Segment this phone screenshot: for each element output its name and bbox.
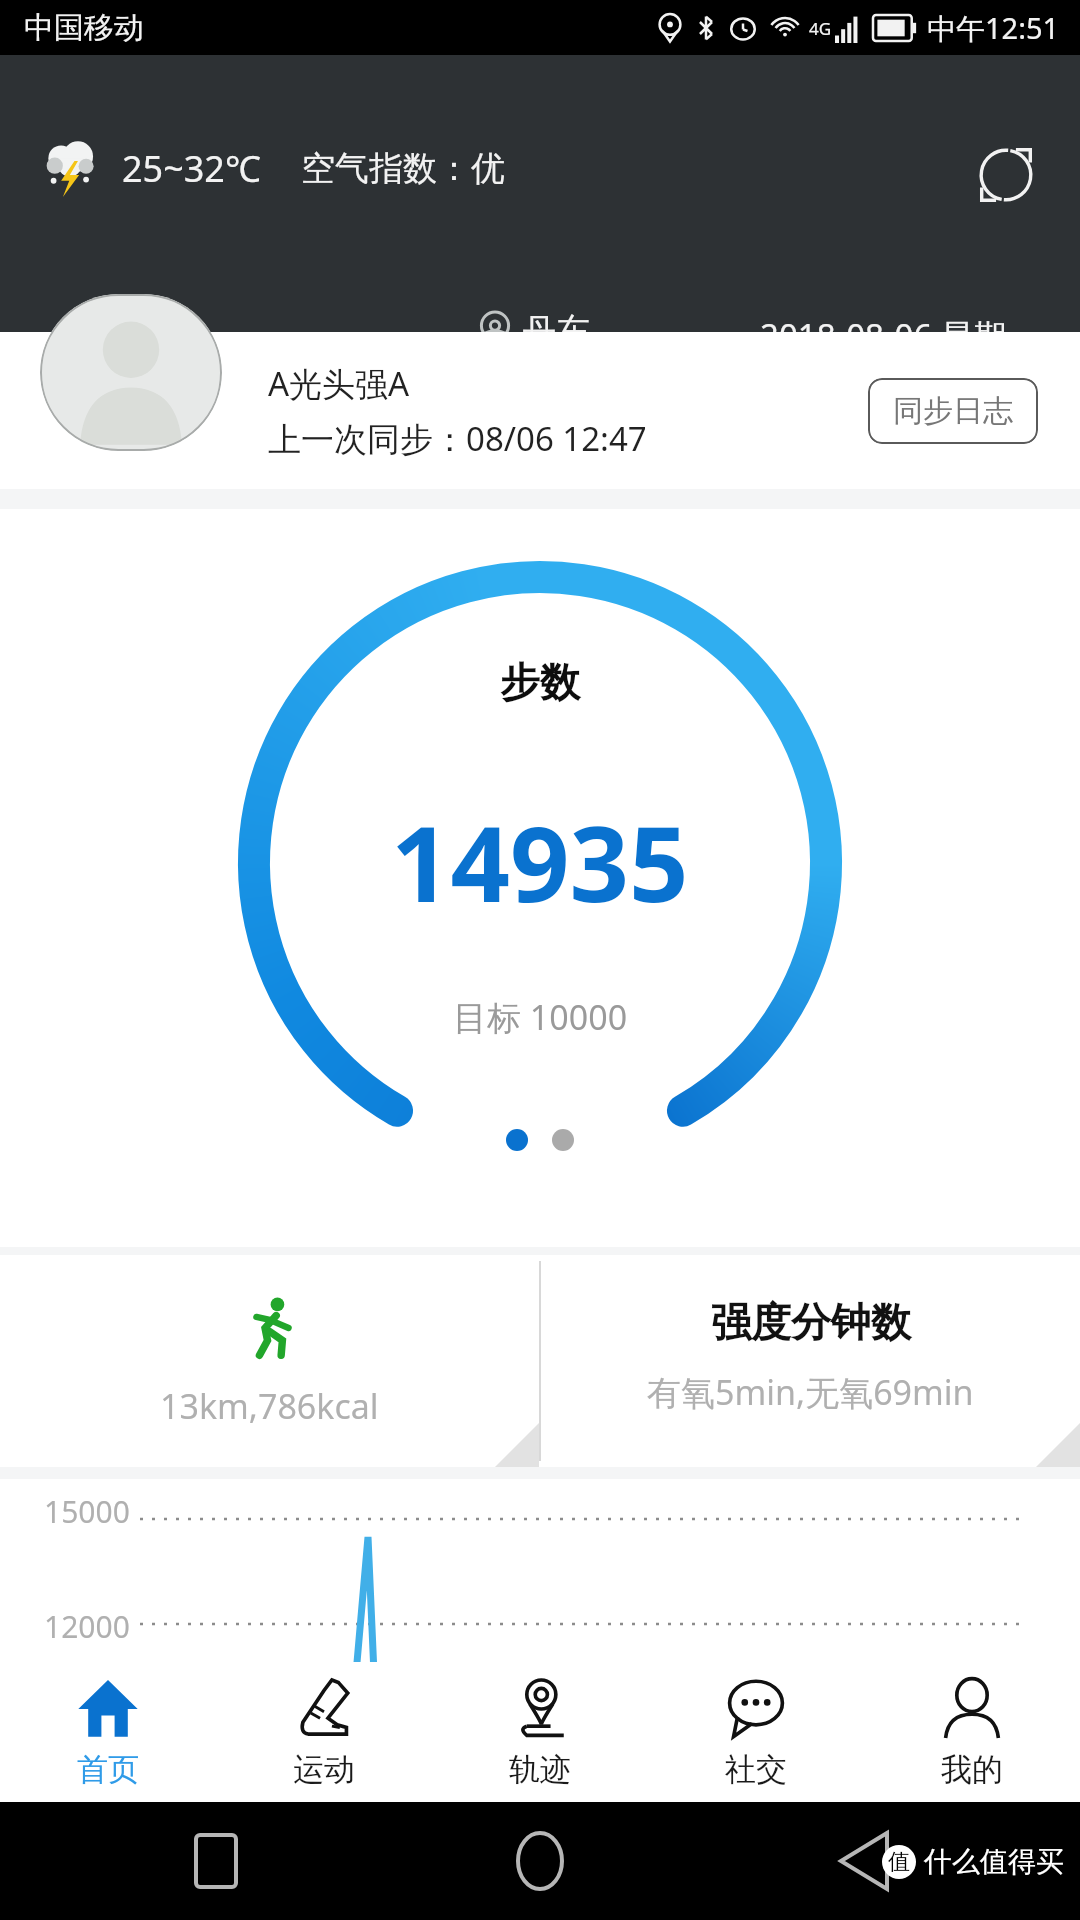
staticText: 13km,786kcal	[160, 1383, 379, 1429]
button[interactable]: Recent apps	[180, 1825, 252, 1897]
button[interactable]: 丹东	[478, 310, 590, 332]
button[interactable]: Profile avatar	[40, 294, 222, 451]
button[interactable]: 25~32℃	[42, 139, 505, 197]
staticText: 9000	[44, 1725, 113, 1766]
button[interactable]: 我的	[864, 1662, 1080, 1802]
button[interactable]: 轨迹	[432, 1662, 648, 1802]
button[interactable]: 强度分钟数	[541, 1255, 1080, 1467]
staticText: 丹东	[522, 310, 590, 332]
staticText: 值	[888, 1848, 910, 1876]
button[interactable]: Back	[828, 1825, 900, 1897]
button[interactable]: 同步日志	[868, 378, 1038, 444]
button[interactable]: Profile avatar	[0, 332, 1080, 489]
staticText: 运动	[293, 1750, 355, 1789]
button[interactable]: Page 1	[506, 1129, 528, 1151]
staticText: 同步日志	[893, 392, 1013, 430]
staticText: 中国移动	[24, 9, 144, 47]
staticText: A光头强A	[268, 361, 410, 406]
staticText: 上一次同步：08/06 12:47	[268, 416, 647, 461]
staticText: 25~32℃	[122, 144, 261, 193]
staticText: 有氧5min,无氧69min	[647, 1369, 974, 1415]
button[interactable]: Refresh	[966, 135, 1046, 215]
staticText: 2018-08-06 星期一	[760, 313, 1040, 332]
staticText: 轨迹	[509, 1750, 571, 1789]
button[interactable]: 社交	[648, 1662, 864, 1802]
button[interactable]: 首页	[0, 1662, 216, 1802]
staticText: 强度分钟数	[711, 1297, 911, 1347]
button[interactable]: Home	[504, 1825, 576, 1897]
button[interactable]: Page 2	[552, 1129, 574, 1151]
button[interactable]: Steps distance and calories	[0, 1255, 539, 1467]
staticText: 空气指数：优	[301, 147, 505, 190]
staticText: 目标 10000	[453, 994, 628, 1040]
staticText: 什么值得买	[924, 1844, 1064, 1879]
staticText: 4G	[809, 17, 832, 40]
button[interactable]: 步数	[0, 509, 1080, 1247]
staticText: 社交	[725, 1750, 787, 1789]
staticText: 中午12:51	[927, 8, 1060, 48]
staticText: 我的	[941, 1750, 1003, 1789]
staticText: 14935	[391, 791, 689, 933]
staticText: 12000	[44, 1606, 130, 1647]
staticText: 步数	[500, 657, 580, 707]
staticText: 首页	[77, 1750, 139, 1789]
button[interactable]: 运动	[216, 1662, 432, 1802]
staticText: 15000	[44, 1491, 130, 1532]
